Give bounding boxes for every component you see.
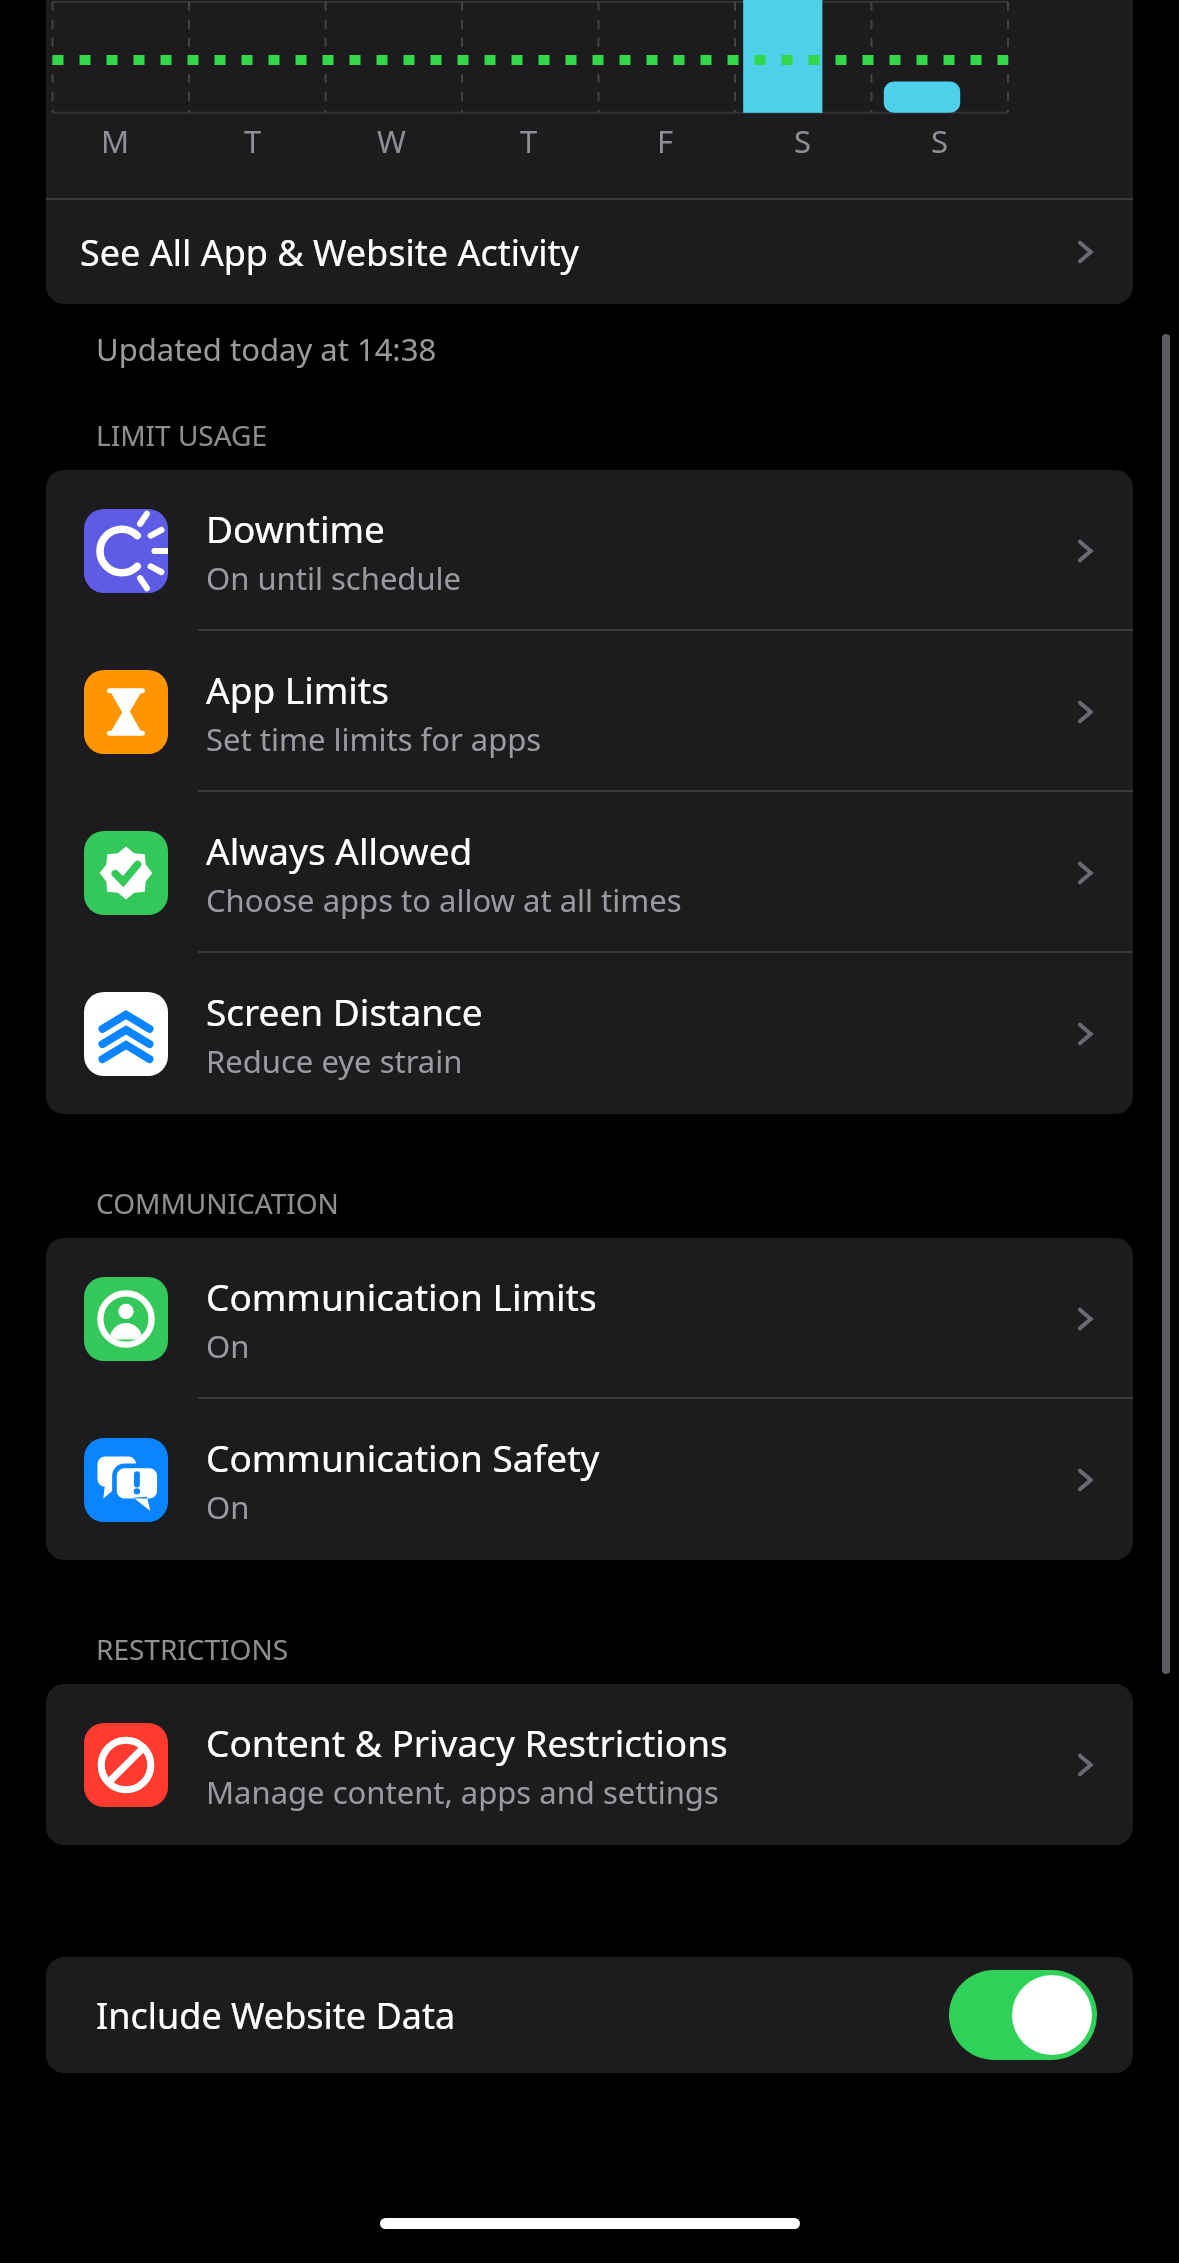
staticText: LIMIT USAGE xyxy=(96,416,268,454)
button[interactable]: Downtime xyxy=(46,470,1133,631)
staticText: S xyxy=(931,120,949,162)
staticText: On until schedule xyxy=(206,557,462,599)
button[interactable]: App Limits xyxy=(46,631,1133,792)
staticText: Choose apps to allow at all times xyxy=(206,879,682,921)
staticText: T xyxy=(520,120,538,162)
staticText: See All App & Website Activity xyxy=(80,228,579,277)
button[interactable]: Content & Privacy Restrictions xyxy=(46,1684,1133,1845)
staticText: Reduce eye strain xyxy=(206,1040,463,1082)
staticText: T xyxy=(244,120,262,162)
staticText: W xyxy=(377,120,406,162)
staticText: On xyxy=(206,1486,250,1528)
staticText: Downtime xyxy=(206,503,385,553)
staticText: Include Website Data xyxy=(96,1991,456,2040)
staticText: On xyxy=(206,1325,250,1367)
button[interactable]: Screen Distance xyxy=(46,953,1133,1114)
staticText: App Limits xyxy=(206,664,389,714)
button[interactable]: Include Website Data, on xyxy=(949,1970,1097,2060)
button[interactable]: Communication Limits xyxy=(46,1238,1133,1399)
staticText: M xyxy=(101,120,130,162)
staticText: Communication Safety xyxy=(206,1432,600,1482)
staticText: Screen Distance xyxy=(206,986,483,1036)
staticText: Set time limits for apps xyxy=(206,718,542,760)
button[interactable]: Always Allowed xyxy=(46,792,1133,953)
button[interactable]: See All App & Website Activity xyxy=(46,200,1133,304)
staticText: COMMUNICATION xyxy=(96,1184,339,1222)
staticText: RESTRICTIONS xyxy=(96,1630,289,1668)
staticText: Manage content, apps and settings xyxy=(206,1771,719,1813)
staticText: Updated today at 14:38 xyxy=(96,328,437,370)
button[interactable]: Communication Safety xyxy=(46,1399,1133,1560)
staticText: Content & Privacy Restrictions xyxy=(206,1717,728,1767)
staticText: Communication Limits xyxy=(206,1271,597,1321)
staticText: Always Allowed xyxy=(206,825,473,875)
staticText: S xyxy=(794,120,812,162)
staticText: F xyxy=(657,120,674,162)
button[interactable]: Include Website Data xyxy=(46,1957,1133,2073)
